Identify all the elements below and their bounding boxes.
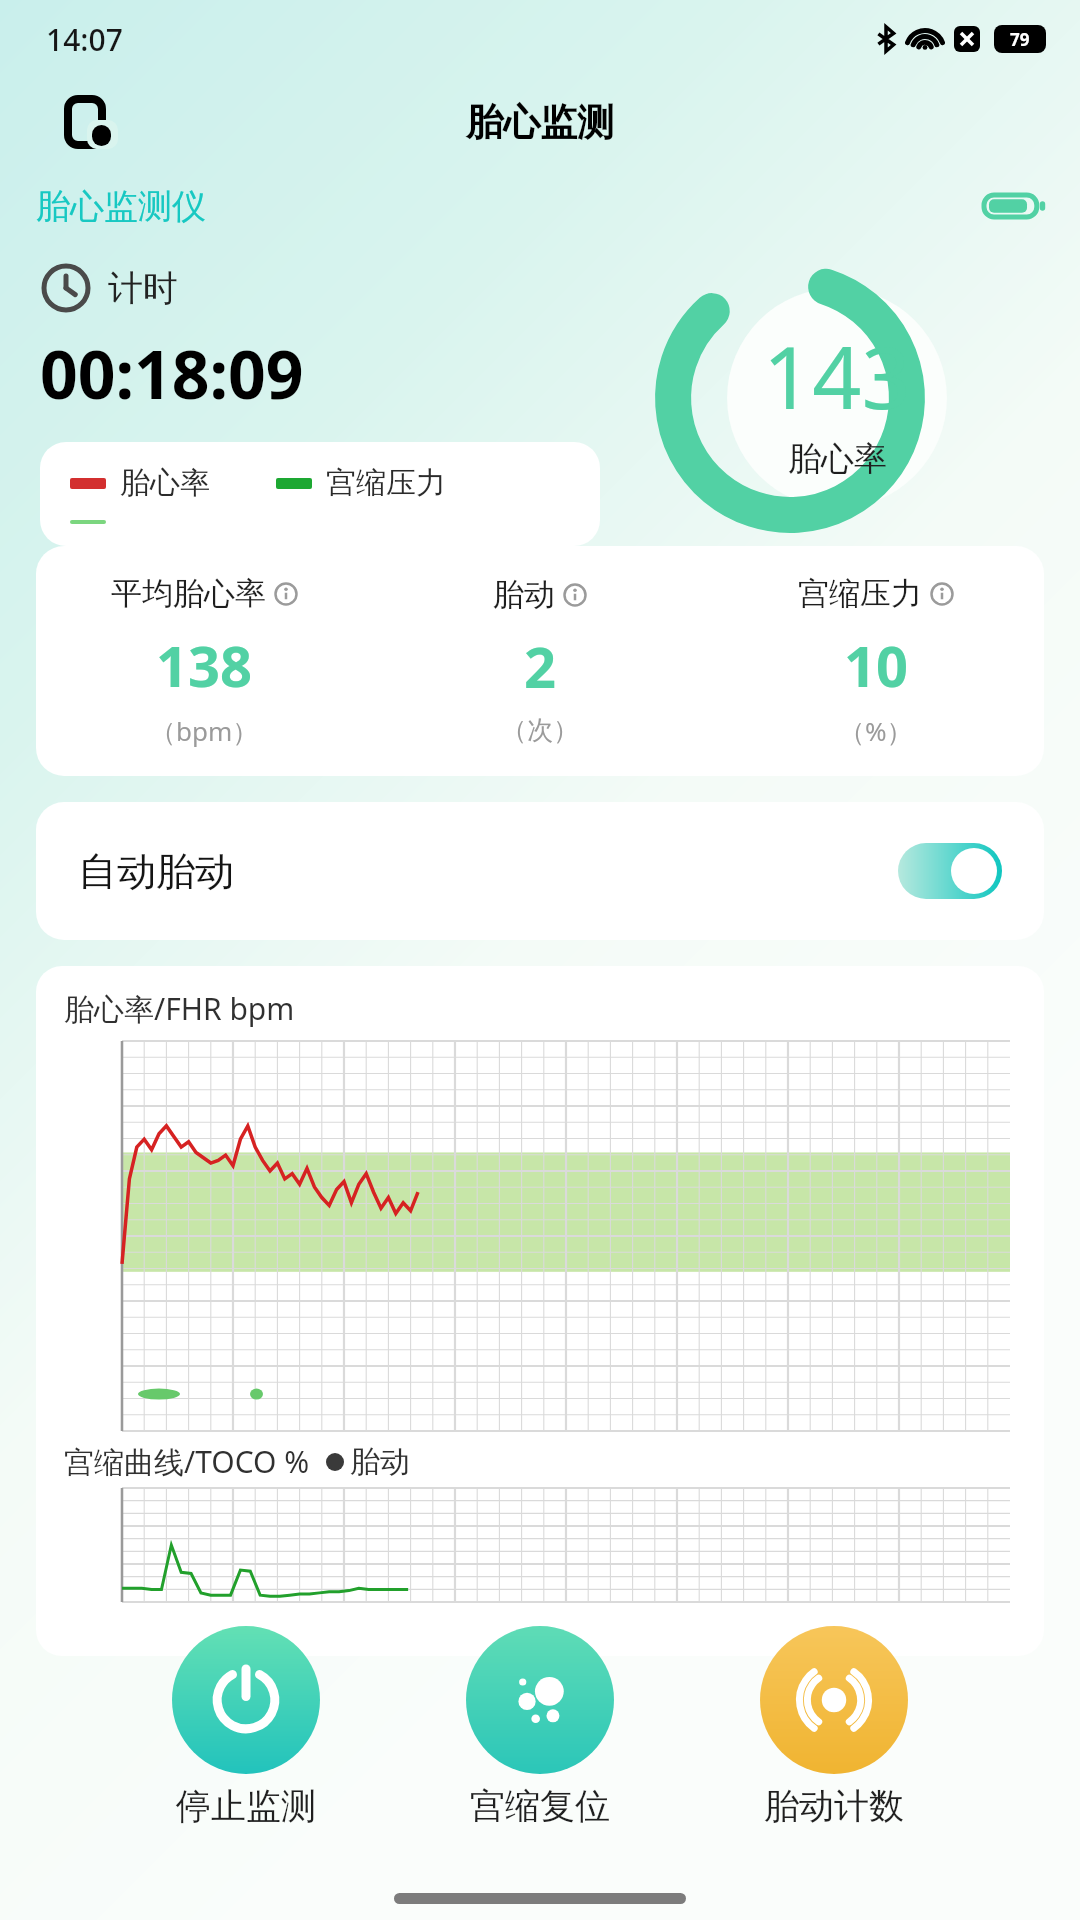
staticText: 胎心率 [120,464,210,502]
staticText: 00:18:09 [40,328,304,418]
button[interactable] [898,843,1002,899]
staticText: 14:07 [46,19,123,60]
staticText: 胎动 [493,575,555,614]
staticText: 胎心监测仪 [36,185,206,228]
staticText: 胎心率/FHR bpm [64,988,295,1029]
staticText: （次） [501,714,579,747]
staticText: （%） [839,713,913,749]
staticText: 胎动 [350,1443,410,1481]
button[interactable]: 自动胎动 [36,802,1044,940]
staticText: （bpm） [150,713,259,749]
button[interactable]: 平均胎心率 [36,546,1044,776]
staticText: 停止监测 [176,1784,316,1828]
staticText: 138 [156,627,253,703]
staticText: 79 [1010,28,1030,51]
staticText: 胎心监测 [466,99,614,146]
staticText: 143 [763,317,911,434]
staticText: 宫缩压力 [326,464,446,502]
staticText: 胎心率 [788,438,887,480]
button[interactable]: 宫缩复位 [466,1626,614,1828]
staticText: 2 [524,628,557,704]
staticText: 宫缩曲线/TOCO % [64,1441,310,1482]
staticText: 宫缩复位 [470,1784,610,1828]
staticText: 自动胎动 [78,847,234,896]
button[interactable]: Picture in picture [60,91,122,153]
staticText: 10 [844,627,909,703]
staticText: 平均胎心率 [111,574,266,613]
staticText: 胎动计数 [764,1784,904,1828]
button[interactable]: 停止监测 [172,1626,320,1828]
staticText: 计时 [108,266,178,310]
staticText: 宫缩压力 [798,574,922,613]
button[interactable]: 胎动计数 [760,1626,908,1828]
